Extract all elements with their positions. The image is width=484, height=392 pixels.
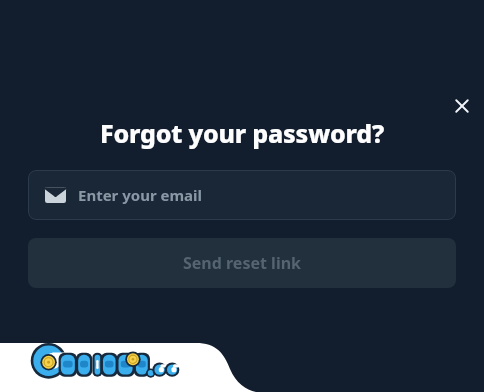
button[interactable]: Send reset link (28, 238, 456, 288)
staticText: Forgot your password? (0, 116, 484, 150)
button[interactable]: Enter your email (28, 170, 456, 220)
button[interactable]: Close (444, 88, 480, 124)
staticText: Send reset link (183, 252, 301, 274)
staticText: Enter your email (78, 185, 203, 205)
button[interactable]: Casinos.cc home (36, 342, 184, 386)
